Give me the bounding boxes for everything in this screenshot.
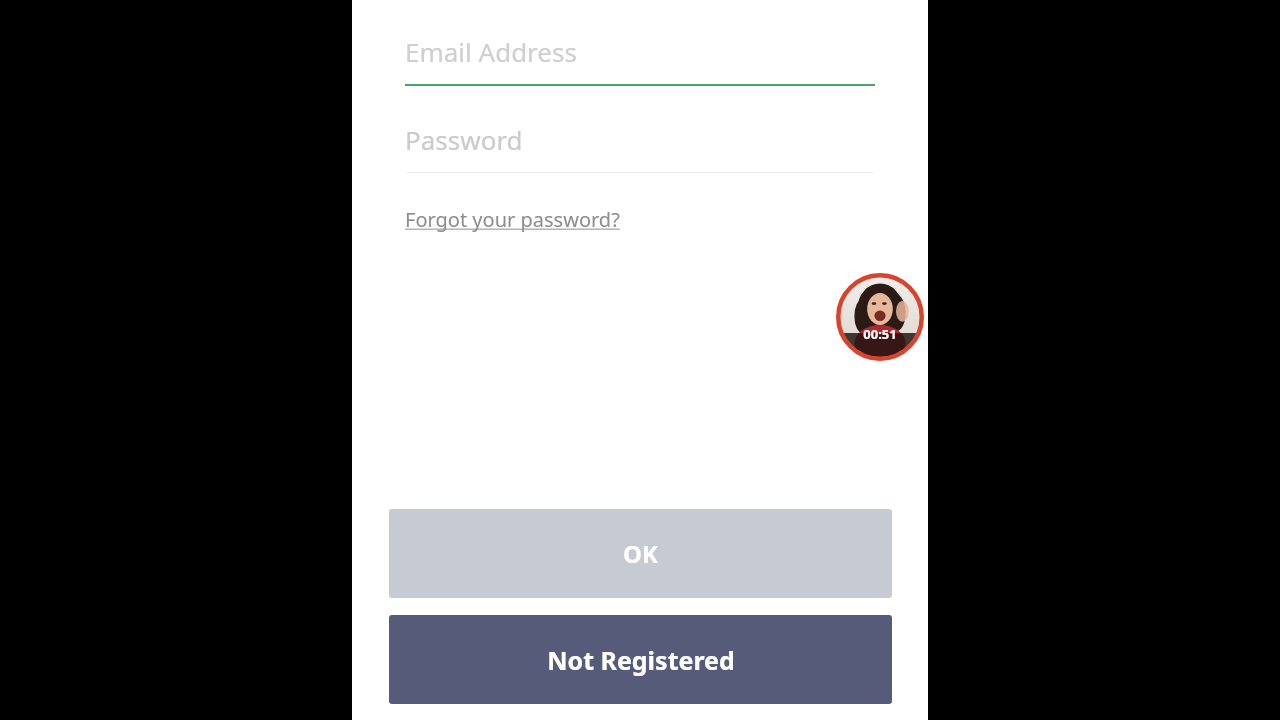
staticText: Password <box>405 122 523 157</box>
staticText: Forgot your password? <box>405 206 620 233</box>
button[interactable]: Forgot your password? <box>405 204 620 235</box>
button[interactable]: OK <box>389 509 892 598</box>
staticText: OK <box>623 537 658 570</box>
staticText: 00:51 <box>863 325 897 343</box>
button[interactable]: Not Registered <box>389 615 892 704</box>
staticText: Not Registered <box>547 643 735 677</box>
button[interactable]: Video call bubble, 00:51 <box>836 273 924 361</box>
staticText: Email Address <box>405 34 577 69</box>
